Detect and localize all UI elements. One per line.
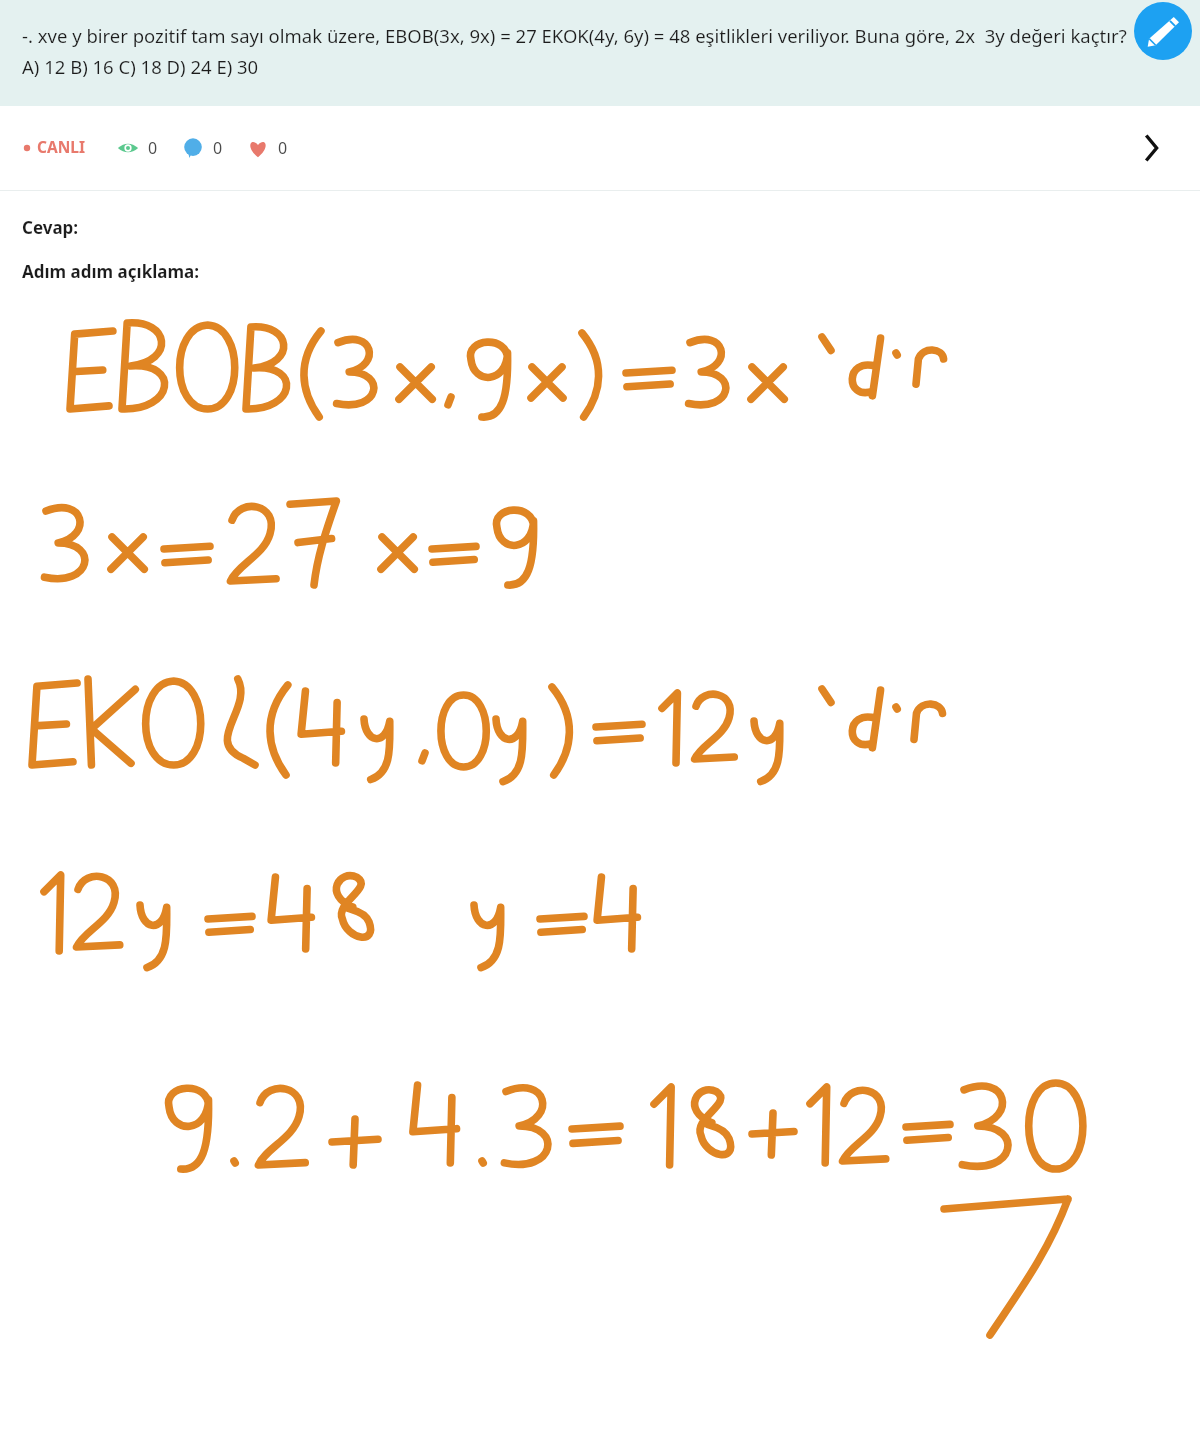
button[interactable]: Next (1132, 127, 1174, 169)
staticText: Adım adım açıklama: (22, 261, 199, 283)
button[interactable]: Comments (182, 137, 223, 159)
staticText: Cevap: (22, 217, 79, 239)
button[interactable]: Edit (1134, 2, 1192, 60)
staticText: CANLI (37, 139, 85, 157)
staticText: 0 (148, 138, 158, 158)
button[interactable]: Likes (247, 137, 288, 159)
staticText: -. xve y birer pozitif tam sayı olmak üz… (22, 19, 1142, 81)
button[interactable]: Views (117, 137, 158, 159)
staticText: 0 (213, 138, 223, 158)
staticText: 0 (278, 138, 288, 158)
